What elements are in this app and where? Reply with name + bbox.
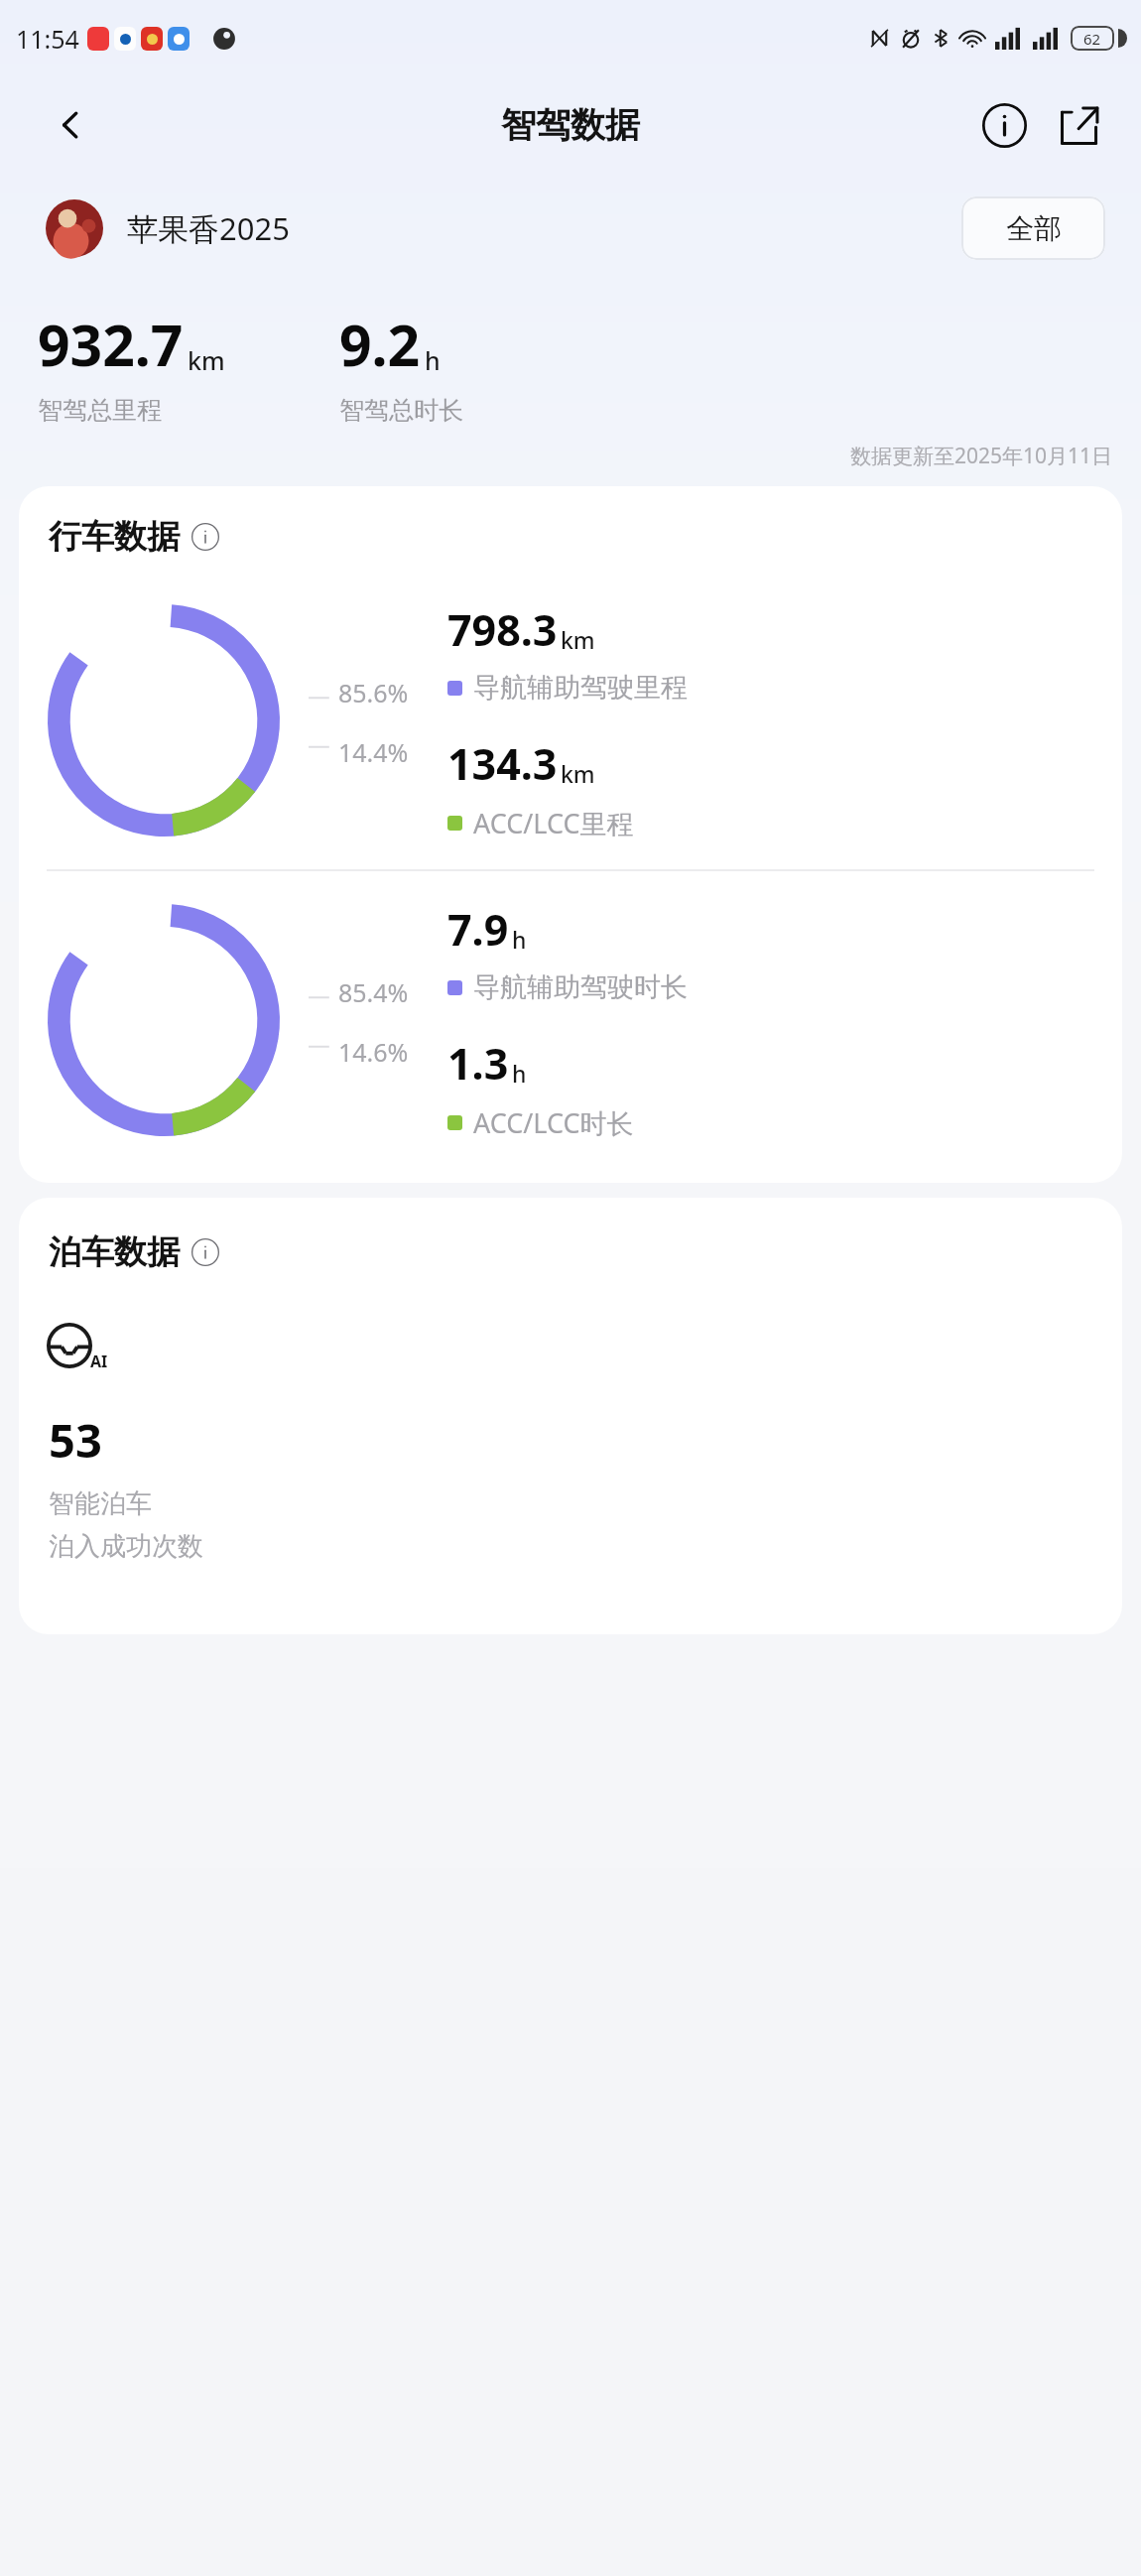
staticText: 85.4% [338, 975, 409, 1009]
staticText: h [425, 343, 441, 377]
staticText: 行车数据 [49, 516, 180, 558]
staticText: km [561, 624, 595, 655]
button[interactable]: 泊车数据 [19, 1198, 1122, 1634]
staticText: 85.6% [338, 676, 409, 709]
staticText: 134.3 [447, 734, 558, 793]
button[interactable]: Back [44, 98, 97, 152]
staticText: 53 [49, 1408, 102, 1472]
staticText: 智驾总里程 [38, 395, 162, 426]
staticText: 智驾数据 [501, 103, 640, 147]
staticText: 62 [1083, 29, 1101, 49]
staticText: ACC/LCC时长 [473, 1104, 634, 1141]
staticText: 全部 [1006, 211, 1062, 246]
staticText: 智能泊车 [49, 1487, 152, 1520]
staticText: 798.3 [447, 600, 558, 659]
staticText: 泊入成功次数 [49, 1530, 203, 1563]
staticText: 7.9 [447, 900, 509, 959]
staticText: 数据更新至2025年10月11日 [850, 442, 1113, 470]
staticText: h [512, 924, 527, 955]
button[interactable]: 行车数据 [19, 486, 1122, 1183]
staticText: AI [90, 1351, 108, 1372]
staticText: ACC/LCC里程 [473, 805, 634, 841]
staticText: 苹果香2025 [127, 207, 290, 249]
button[interactable]: Information [972, 93, 1036, 157]
staticText: 14.4% [338, 735, 409, 769]
staticText: 14.6% [338, 1035, 409, 1069]
staticText: 1.3 [447, 1034, 509, 1093]
staticText: 932.7 [38, 306, 184, 383]
staticText: 导航辅助驾驶里程 [473, 671, 688, 705]
staticText: 智驾总时长 [339, 395, 463, 426]
button[interactable]: 全部 [961, 196, 1105, 260]
staticText: km [561, 758, 595, 789]
staticText: h [512, 1058, 527, 1089]
staticText: 导航辅助驾驶时长 [473, 970, 688, 1004]
staticText: 11:54 [16, 22, 79, 56]
staticText: 泊车数据 [49, 1231, 180, 1273]
button[interactable]: Share [1048, 93, 1111, 157]
staticText: km [188, 343, 225, 377]
staticText: 9.2 [339, 306, 421, 383]
